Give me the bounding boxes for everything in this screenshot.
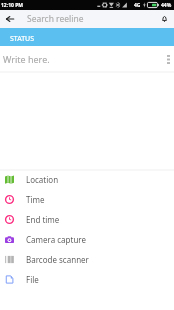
staticText: Write here. [3,53,50,65]
staticText: 4G [134,2,141,9]
button[interactable]: Location [0,169,174,189]
button[interactable]: Back [0,10,20,28]
staticText: 12:10 PM [1,2,23,9]
staticText: Barcode scanner [26,254,89,265]
button[interactable]: Time [0,189,174,209]
staticText: Time [26,194,45,205]
button[interactable]: Camera capture [0,229,174,249]
button[interactable]: More options [160,46,174,71]
staticText: Search reeline [27,13,84,25]
staticText: End time [26,214,60,225]
staticText: Location [26,174,59,185]
staticText: STATUS [10,34,35,44]
button[interactable]: Barcode scanner [0,249,174,269]
button[interactable]: STATUS [0,28,174,47]
button[interactable]: End time [0,209,174,229]
button[interactable]: File [0,269,174,289]
staticText: 44% [161,2,172,9]
button[interactable]: Notifications [157,10,171,28]
staticText: File [26,274,39,285]
staticText: Camera capture [26,234,86,245]
